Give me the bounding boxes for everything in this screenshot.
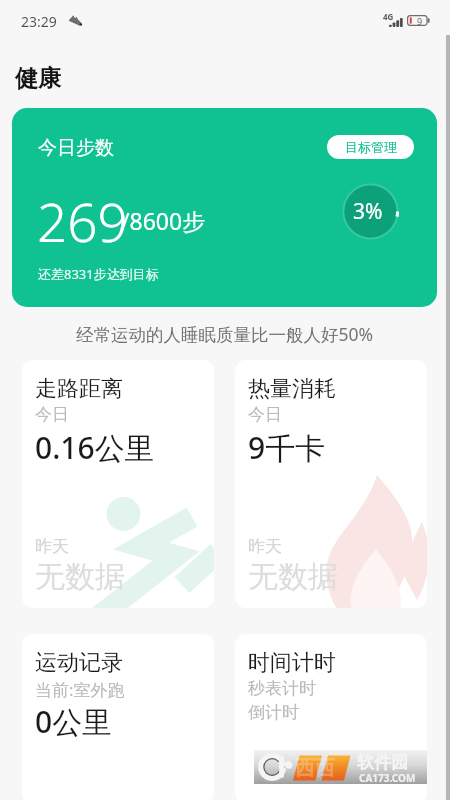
staticText: 今日 — [35, 404, 69, 425]
staticText: 时间计时 — [248, 649, 336, 677]
button[interactable]: 运动记录 — [22, 634, 214, 800]
staticText: 无数据 — [248, 558, 338, 596]
staticText: 23:29 — [21, 12, 57, 31]
staticText: 倒计时 — [248, 702, 299, 723]
button[interactable]: 走路距离 — [22, 360, 214, 608]
staticText: 9 — [417, 15, 423, 26]
staticText: 还差8331步达到目标 — [38, 265, 159, 283]
staticText: 3% — [353, 197, 383, 226]
staticText: /8600步 — [121, 205, 206, 236]
staticText: 西西 — [295, 756, 335, 781]
staticText: 秒表计时 — [248, 678, 316, 699]
staticText: 走路距离 — [35, 375, 123, 403]
staticText: 健康 — [15, 64, 61, 93]
staticText: 热量消耗 — [248, 375, 336, 403]
staticText: 昨天 — [248, 536, 282, 557]
button[interactable]: 热量消耗 — [235, 360, 427, 608]
button[interactable]: 今日步数 — [12, 108, 437, 307]
staticText: 当前:室外跑 — [35, 678, 125, 701]
staticText: 今日 — [248, 404, 282, 425]
button[interactable]: 时间计时 — [235, 634, 427, 800]
staticText: 无数据 — [35, 558, 125, 596]
staticText: 9千卡 — [248, 427, 326, 468]
staticText: 0.16公里 — [35, 427, 155, 468]
staticText: 昨天 — [35, 536, 69, 557]
staticText: 今日步数 — [38, 136, 114, 160]
staticText: 运动记录 — [35, 649, 123, 677]
staticText: 经常运动的人睡眠质量比一般人好50% — [22, 322, 427, 346]
staticText: 0公里 — [35, 701, 113, 742]
button[interactable]: 目标管理 — [327, 135, 414, 159]
staticText: 4G — [383, 11, 394, 22]
staticText: 269 — [37, 185, 128, 257]
staticText: 软件园 — [357, 752, 408, 773]
staticText: 目标管理 — [345, 139, 397, 155]
staticText: CA173.COM — [359, 771, 416, 785]
